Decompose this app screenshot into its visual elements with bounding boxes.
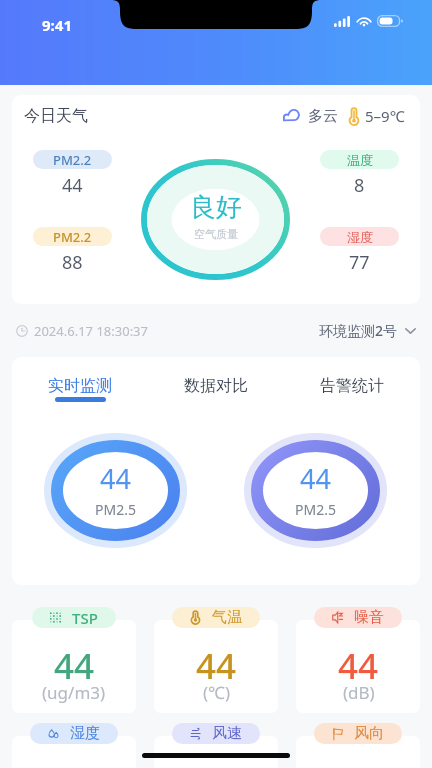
staticText: 9:41 [42,15,72,35]
staticText: 多云 [308,107,338,126]
staticText: 44 [100,460,131,497]
staticText: 8 [354,173,365,198]
staticText: 空气质量 [194,227,238,241]
button[interactable]: 湿度 [30,723,118,744]
staticText: 数据对比 [184,376,248,396]
button[interactable]: 44 [154,736,278,768]
button[interactable]: 环境监测2号 [319,321,416,340]
staticText: TSP [72,608,98,628]
staticText: PM2.2 [53,228,92,246]
staticText: 环境监测2号 [319,321,398,340]
staticText: (℃) [203,681,231,704]
button[interactable]: 气温 [172,607,260,628]
button[interactable]: 数据对比 [148,376,284,397]
button[interactable]: 实时监测 [12,376,148,402]
staticText: 今日天气 [24,106,88,126]
staticText: 44 [196,642,237,690]
button[interactable]: 噪音 [314,607,402,628]
button[interactable]: 44 [154,620,278,713]
staticText: 77 [349,250,370,275]
button[interactable]: 风向 [314,723,402,744]
staticText: 湿度 [347,229,373,245]
staticText: 温度 [347,152,373,168]
staticText: PM2.5 [295,500,336,519]
button[interactable]: 44 [296,620,420,713]
button[interactable]: 44 [12,620,136,713]
staticText: 湿度 [70,724,100,743]
staticText: 5–9℃ [365,106,405,126]
staticText: PM2.5 [95,500,136,519]
staticText: 88 [62,250,83,275]
staticText: 风速 [212,724,242,743]
button[interactable]: 风速 [172,723,260,744]
staticText: (dB) [343,681,375,704]
button[interactable]: 告警统计 [284,376,420,397]
staticText: 44 [338,642,379,690]
staticText: (ug/m3) [42,681,106,704]
staticText: 44 [62,173,83,198]
button[interactable]: 44 [296,736,420,768]
staticText: 良好 [190,191,242,224]
staticText: 风向 [354,724,384,743]
button[interactable]: 44 [12,736,136,768]
staticText: PM2.2 [53,151,92,169]
button[interactable]: TSP [32,607,116,628]
staticText: 44 [54,642,95,690]
staticText: 告警统计 [320,376,384,396]
staticText: 气温 [212,608,242,627]
staticText: 噪音 [354,608,384,627]
staticText: 44 [300,460,331,497]
staticText: 实时监测 [48,376,112,396]
staticText: 2024.6.17 18:30:37 [34,322,148,340]
